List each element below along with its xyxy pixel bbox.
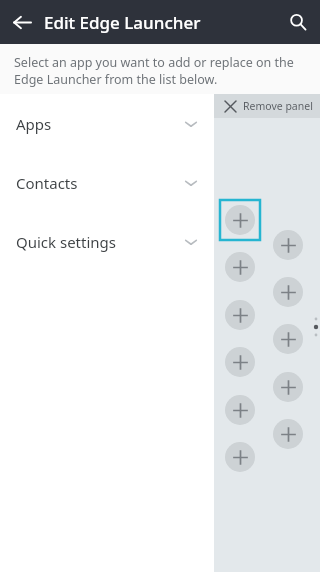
button[interactable]: Add app (273, 324, 303, 354)
button[interactable]: Add app (225, 442, 255, 472)
button[interactable]: Add app (273, 277, 303, 307)
button[interactable]: Quick settings (0, 212, 214, 271)
button[interactable]: Add app (273, 419, 303, 449)
button[interactable]: Remove panel (214, 94, 320, 118)
button[interactable]: Add app (225, 300, 255, 330)
button[interactable]: Apps (0, 94, 214, 153)
staticText: Remove panel (243, 99, 313, 113)
button[interactable]: Add app (273, 372, 303, 402)
button[interactable]: Selected slot (220, 200, 260, 240)
staticText: Quick settings (16, 232, 116, 252)
staticText: Edit Edge Launcher (44, 11, 201, 34)
staticText: Contacts (16, 173, 78, 193)
staticText: Apps (16, 114, 52, 134)
button[interactable]: Search (276, 0, 320, 44)
button[interactable]: Add app (273, 230, 303, 260)
staticText: Select an app you want to add or replace… (14, 54, 306, 88)
button[interactable]: Add app (225, 395, 255, 425)
button[interactable]: Add app (225, 347, 255, 377)
button[interactable]: Back (0, 0, 44, 44)
button[interactable]: Contacts (0, 153, 214, 212)
button[interactable]: Add app (225, 205, 255, 235)
button[interactable]: Add app (225, 252, 255, 282)
